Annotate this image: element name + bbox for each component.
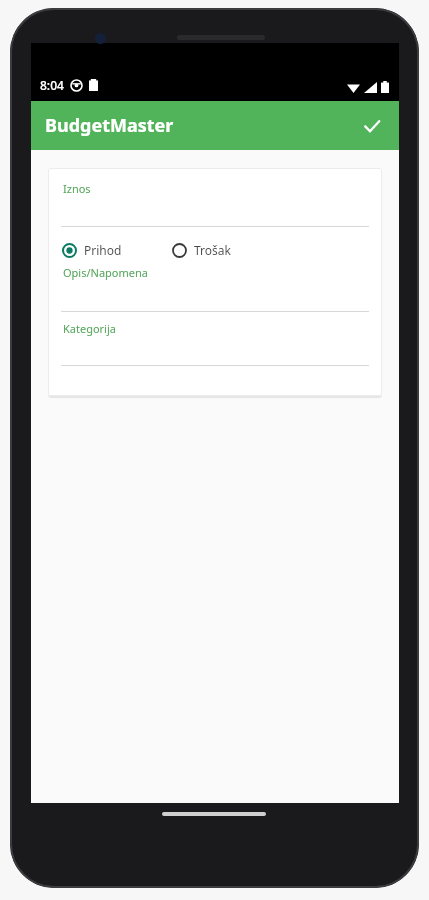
staticText: Kategorija (63, 321, 116, 336)
staticText: Trošak (194, 242, 231, 258)
button[interactable]: Prihod (58, 239, 126, 261)
button[interactable]: Opis/Napomena (58, 265, 372, 280)
button[interactable]: Kategorija (58, 321, 372, 336)
staticText: 8:04 (40, 77, 64, 93)
button[interactable]: Save (351, 105, 393, 147)
staticText: BudgetMaster (45, 113, 174, 138)
staticText: Opis/Napomena (63, 265, 148, 280)
button[interactable]: Iznos (58, 181, 372, 196)
button[interactable]: Trošak (168, 239, 235, 261)
staticText: Iznos (63, 181, 91, 196)
staticText: Prihod (84, 242, 122, 258)
